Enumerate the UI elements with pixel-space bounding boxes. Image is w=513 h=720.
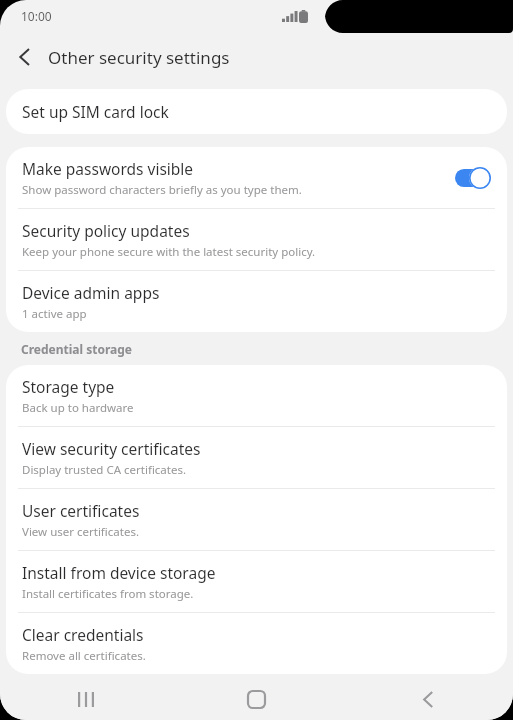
other: Make passwords visible toggle: [455, 167, 491, 189]
button[interactable]: View security certificates: [6, 427, 507, 488]
staticText: View user certificates.: [22, 524, 139, 540]
staticText: Storage type: [22, 376, 115, 397]
button[interactable]: Back: [0, 33, 48, 81]
button[interactable]: Recents: [0, 679, 171, 720]
button[interactable]: Device admin apps: [6, 271, 507, 332]
button[interactable]: Install from device storage: [6, 551, 507, 612]
button[interactable]: User certificates: [6, 489, 507, 550]
button[interactable]: Clear credentials: [6, 613, 507, 674]
staticText: Other security settings: [48, 46, 230, 69]
staticText: Install certificates from storage.: [22, 586, 194, 602]
staticText: Remove all certificates.: [22, 648, 146, 664]
staticText: Make passwords visible: [22, 158, 194, 179]
button[interactable]: Home: [171, 679, 342, 720]
button[interactable]: Security policy updates: [6, 209, 507, 270]
staticText: Show password characters briefly as you …: [22, 182, 302, 198]
button[interactable]: Set up SIM card lock: [6, 89, 507, 134]
staticText: Credential storage: [21, 341, 133, 357]
staticText: 1 active app: [22, 306, 87, 322]
staticText: User certificates: [22, 500, 140, 521]
staticText: Display trusted CA certificates.: [22, 462, 187, 478]
staticText: 10:00: [21, 8, 52, 24]
staticText: Back up to hardware: [22, 400, 134, 416]
staticText: Set up SIM card lock: [22, 101, 169, 122]
button[interactable]: Make passwords visible: [6, 147, 507, 208]
staticText: Security policy updates: [22, 220, 190, 241]
staticText: Install from device storage: [22, 562, 216, 583]
button[interactable]: Storage type: [6, 365, 507, 426]
staticText: Device admin apps: [22, 282, 160, 303]
staticText: Clear credentials: [22, 624, 144, 645]
staticText: Keep your phone secure with the latest s…: [22, 244, 316, 260]
staticText: View security certificates: [22, 438, 201, 459]
button[interactable]: Back: [342, 679, 513, 720]
